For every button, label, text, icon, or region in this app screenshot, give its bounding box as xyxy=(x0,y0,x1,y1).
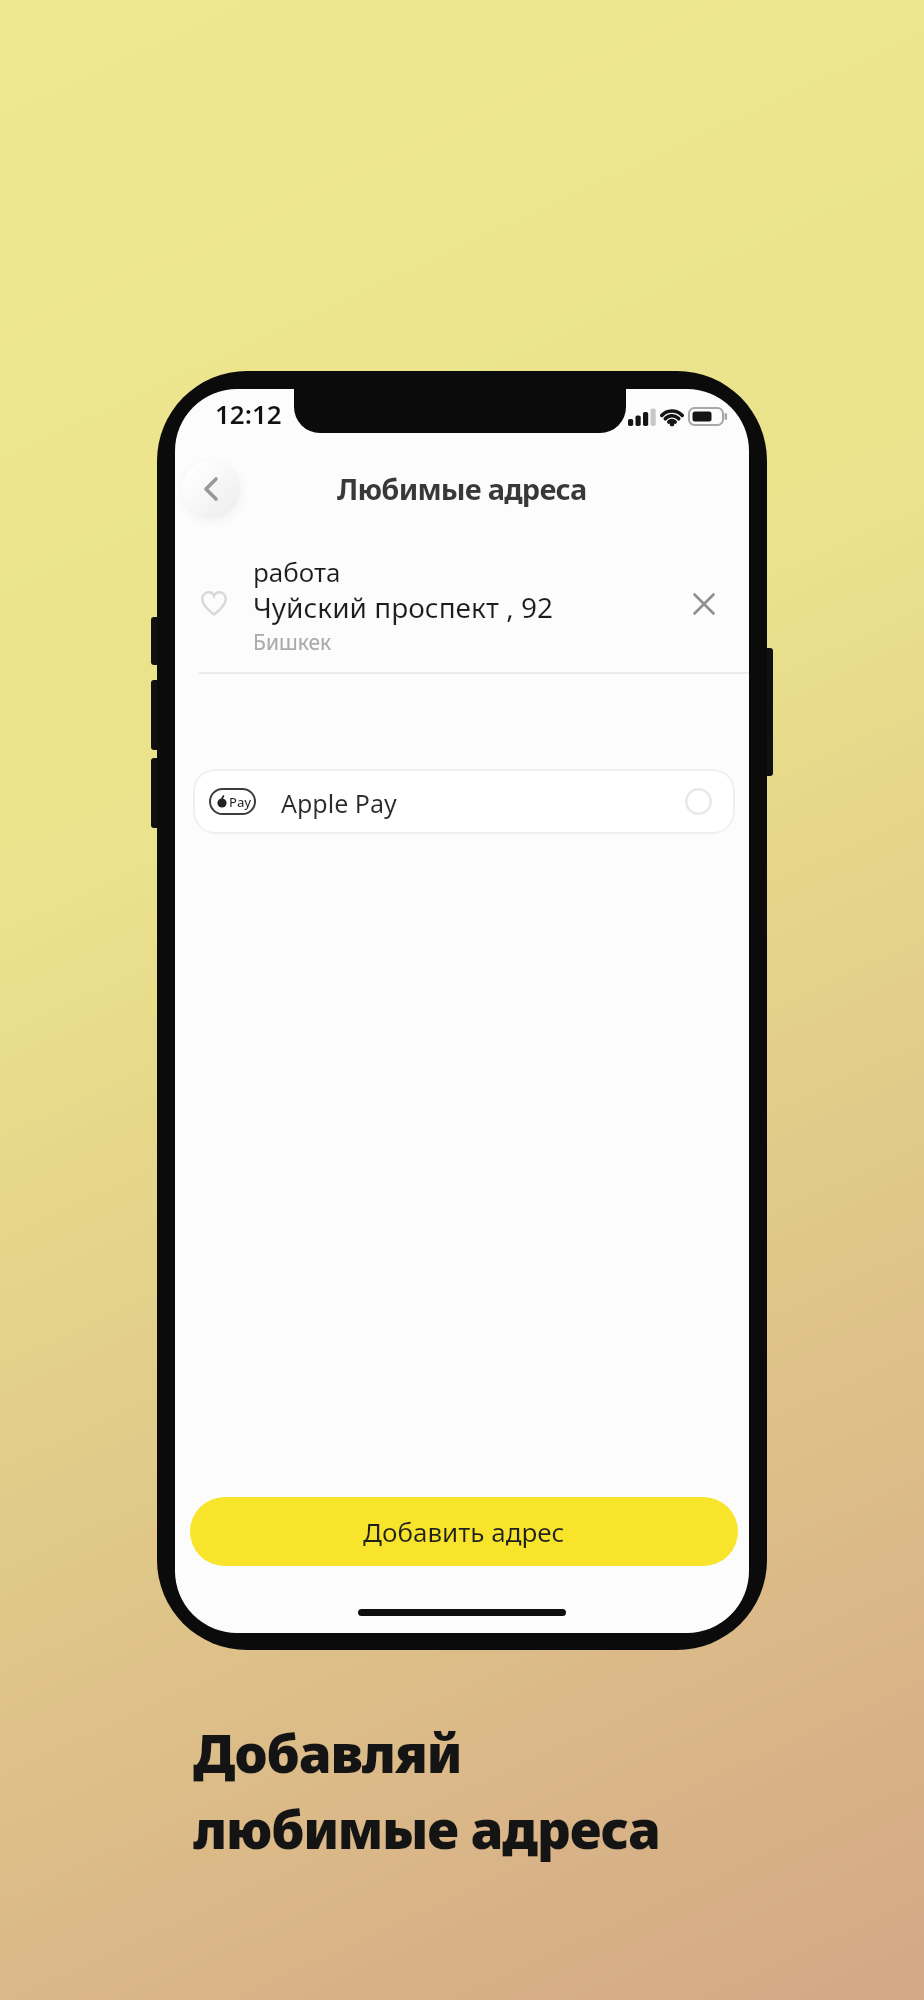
button[interactable] xyxy=(182,460,240,518)
button[interactable]: Добавить адрес xyxy=(190,1497,738,1566)
button[interactable]: работа xyxy=(175,544,749,664)
staticText: Pay xyxy=(229,793,252,811)
staticText: работа xyxy=(253,554,341,589)
staticText: Добавить адрес xyxy=(363,1514,565,1549)
staticText: Apple Pay xyxy=(281,786,397,820)
staticText: любимые адреса xyxy=(193,1792,660,1864)
staticText: Любимые адреса xyxy=(337,469,587,508)
staticText: Чуйский проспект , 92 xyxy=(253,588,554,626)
button[interactable]: Pay xyxy=(193,769,735,834)
staticText: Добавляй xyxy=(193,1716,462,1788)
staticText: Бишкек xyxy=(253,628,332,657)
staticText: 12:12 xyxy=(215,396,282,431)
